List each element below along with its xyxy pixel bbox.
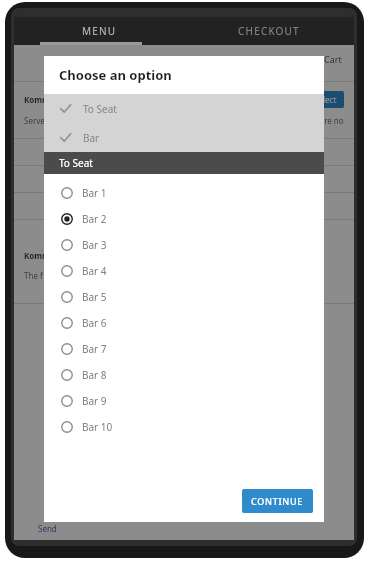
staticText: CONTINUE bbox=[251, 495, 304, 507]
button[interactable]: Collect bbox=[304, 91, 344, 108]
staticText: To Seat bbox=[59, 156, 93, 170]
staticText: CHECKOUT bbox=[238, 24, 300, 38]
staticText: Bar 7 bbox=[82, 342, 107, 356]
button[interactable]: Bar 6 bbox=[44, 310, 324, 336]
button[interactable]: Selected To Seat bbox=[44, 94, 324, 123]
staticText: There are no bbox=[296, 115, 344, 126]
staticText: Bar 2 bbox=[82, 212, 107, 226]
button[interactable]: Bar 9 bbox=[44, 388, 324, 414]
staticText: Bar 1 bbox=[82, 186, 107, 200]
button[interactable]: Bar 7 bbox=[44, 336, 324, 362]
button[interactable]: Bar 3 bbox=[44, 232, 324, 258]
staticText: Bar 10 bbox=[82, 420, 113, 434]
staticText: Bar bbox=[83, 131, 100, 145]
button[interactable]: Bar 5 bbox=[44, 284, 324, 310]
button[interactable]: CHECKOUT bbox=[184, 17, 354, 45]
button[interactable]: Bar 1 bbox=[44, 180, 324, 206]
button[interactable]: Bar 2 bbox=[44, 206, 324, 232]
staticText: Kommentar bbox=[24, 94, 72, 105]
staticText: Choose an option bbox=[59, 66, 172, 84]
staticText: Bar 6 bbox=[82, 316, 107, 330]
staticText: MENU bbox=[82, 24, 117, 38]
staticText: To Seat bbox=[83, 102, 117, 116]
staticText: Collect bbox=[311, 94, 337, 105]
button[interactable]: MENU bbox=[14, 17, 184, 45]
button[interactable]: CONTINUE bbox=[242, 489, 313, 513]
button[interactable]: Bar 10 bbox=[44, 414, 324, 440]
staticText: Serveres bbox=[24, 115, 57, 126]
staticText: Bar 5 bbox=[82, 290, 107, 304]
button[interactable]: Bar 4 bbox=[44, 258, 324, 284]
other: Selected To Seat bbox=[59, 102, 72, 115]
staticText: Cart bbox=[324, 53, 342, 65]
staticText: Bar 8 bbox=[82, 368, 107, 382]
staticText: Send bbox=[38, 523, 57, 534]
button[interactable]: Selected Bar bbox=[44, 123, 324, 152]
staticText: The f bbox=[24, 270, 43, 281]
staticText: Kommentar bbox=[24, 250, 72, 261]
staticText: Bar 9 bbox=[82, 394, 107, 408]
staticText: Bar 3 bbox=[82, 238, 107, 252]
button[interactable]: Bar 8 bbox=[44, 362, 324, 388]
other: Selected Bar bbox=[59, 131, 72, 144]
staticText: Bar 4 bbox=[82, 264, 107, 278]
